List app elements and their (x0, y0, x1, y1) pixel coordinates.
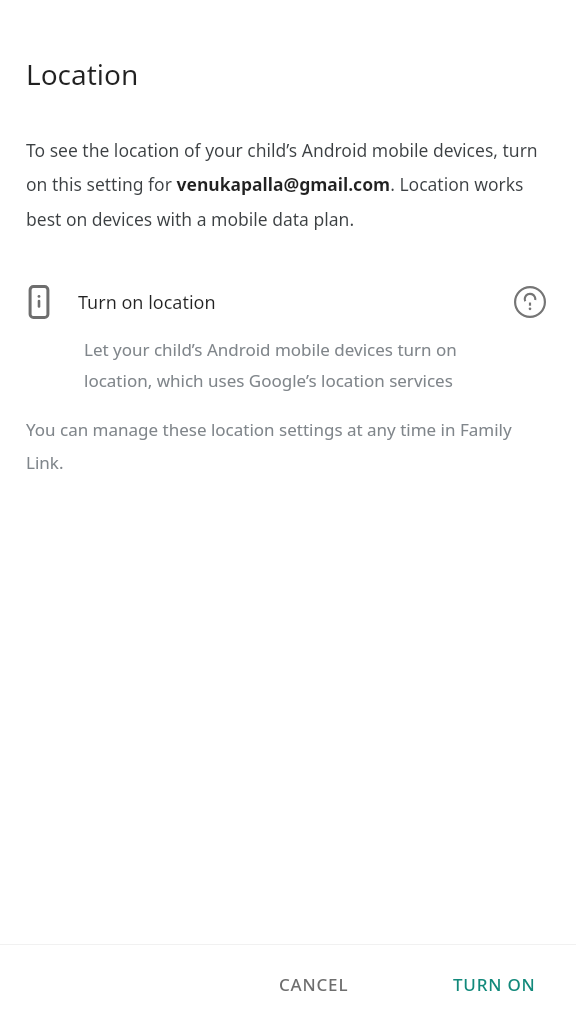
button[interactable]: CANCEL (265, 963, 363, 1006)
button[interactable]: Turn on location (0, 282, 576, 322)
staticText: Let your child’s Android mobile devices … (84, 338, 476, 392)
staticText: To see the location of your child’s Andr… (26, 138, 542, 232)
staticText: CANCEL (279, 973, 349, 996)
staticText: TURN ON (453, 973, 536, 996)
staticText: Turn on location (78, 290, 216, 315)
staticText: You can manage these location settings a… (26, 418, 542, 474)
button[interactable]: TURN ON (439, 963, 550, 1006)
staticText: Location (26, 55, 139, 93)
button[interactable]: Help (510, 282, 550, 322)
